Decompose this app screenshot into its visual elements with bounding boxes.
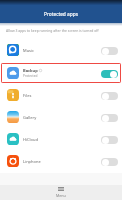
button[interactable]: Protection off	[101, 47, 118, 55]
button[interactable]: Linphone	[0, 150, 122, 172]
staticText: Backup	[23, 68, 38, 73]
button[interactable]: Protection off	[101, 158, 118, 166]
staticText: HiCloud	[23, 137, 38, 142]
staticText: Protected	[23, 74, 38, 78]
button[interactable]: Backup	[0, 62, 122, 84]
button[interactable]: Protection off	[101, 136, 118, 144]
button[interactable]: Menu	[46, 187, 76, 198]
button[interactable]: Protection off	[101, 114, 118, 122]
staticText: Music	[23, 48, 34, 53]
button[interactable]: Protection off	[101, 92, 118, 100]
staticText: Allow 3 apps to keep running after the s…	[6, 28, 99, 33]
staticText: Protected apps	[44, 11, 78, 18]
button[interactable]: Protection on	[101, 70, 118, 78]
staticText: Menu	[56, 193, 66, 198]
button[interactable]: Gallery	[0, 106, 122, 128]
staticText: Linphone	[23, 159, 41, 164]
button[interactable]: HiCloud	[0, 128, 122, 150]
button[interactable]: Music	[0, 39, 122, 61]
staticText: Files	[23, 93, 32, 98]
staticText: Gallery	[23, 115, 37, 120]
button[interactable]: Files	[0, 84, 122, 106]
